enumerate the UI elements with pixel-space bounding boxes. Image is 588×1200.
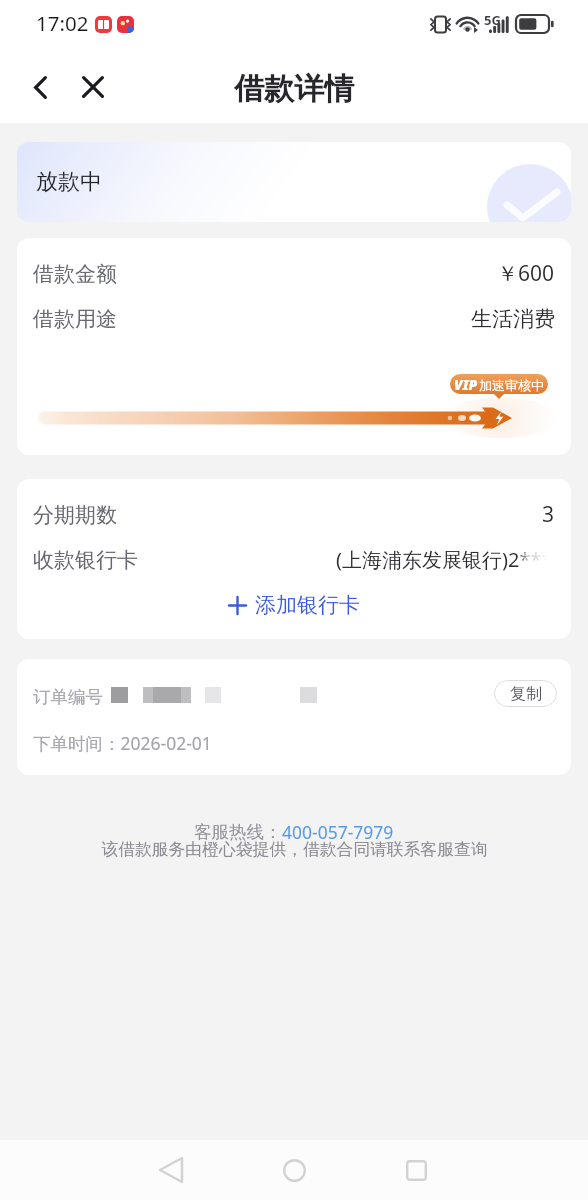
staticText: 生活消费 [471, 306, 555, 332]
button[interactable]: 添加银行卡 [17, 585, 571, 625]
staticText: 订单编号 [33, 686, 103, 708]
staticText: VIP [454, 375, 478, 394]
staticText: 客服热线： [194, 821, 282, 843]
staticText: 放款中 [36, 168, 102, 196]
staticText: 3 [542, 500, 555, 529]
button[interactable]: Close [69, 63, 117, 111]
staticText: 分期期数 [33, 502, 117, 528]
staticText: 加速审核中 [479, 377, 544, 393]
button[interactable]: Back [143, 1142, 199, 1198]
staticText: 借款详情 [234, 70, 354, 108]
staticText: 添加银行卡 [255, 592, 360, 618]
staticText: 5G [484, 11, 501, 29]
button[interactable]: 400-057-7979 [282, 820, 394, 844]
button[interactable]: Back [16, 63, 64, 111]
staticText: 复制 [510, 684, 542, 704]
staticText: ￥600 [497, 259, 555, 288]
staticText: 收款银行卡 [33, 547, 138, 573]
button[interactable]: Recent apps [388, 1142, 444, 1198]
staticText: 下单时间：2026-02-01 [33, 731, 212, 755]
staticText: (上海浦东发展银行)2****1234 [336, 546, 571, 573]
staticText: 17:02 [36, 9, 89, 37]
staticText: 借款用途 [33, 306, 117, 332]
staticText: 借款金额 [33, 261, 117, 287]
button[interactable]: Home [266, 1142, 322, 1198]
button[interactable]: 复制 [494, 680, 557, 707]
staticText: 该借款服务由橙心袋提供，借款合同请联系客服查询 [101, 839, 488, 860]
